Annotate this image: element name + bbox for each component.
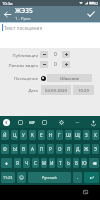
button[interactable]: Я	[14, 158, 21, 168]
button[interactable]: Ю	[81, 158, 87, 168]
staticText: Й	[3, 132, 7, 138]
button[interactable]: Г	[56, 130, 63, 140]
staticText: Х	[94, 132, 97, 138]
button[interactable]: Decrease	[40, 61, 48, 68]
button[interactable]: В	[20, 144, 27, 154]
staticText: Ц	[13, 132, 17, 138]
staticText: У	[22, 132, 25, 138]
button[interactable]: М	[41, 158, 47, 168]
button[interactable]: Ц	[11, 130, 18, 140]
button[interactable]: Обычное	[47, 74, 92, 82]
button[interactable]: О	[56, 144, 63, 154]
staticText: К	[31, 132, 34, 138]
button[interactable]: Л	[65, 144, 72, 154]
staticText: 0	[54, 51, 57, 58]
button[interactable]: Д	[74, 144, 81, 154]
button[interactable]: Sticker	[40, 118, 48, 126]
staticText: Л	[67, 146, 71, 152]
button[interactable]: Х	[92, 130, 99, 140]
staticText: Дата	[28, 87, 38, 93]
button[interactable]: Clipboard	[16, 118, 24, 126]
button[interactable]: Э	[92, 144, 99, 154]
button[interactable]: Increase	[62, 61, 70, 68]
button[interactable]: Settings	[57, 118, 65, 126]
staticText: М	[42, 160, 47, 166]
button[interactable]: К	[29, 130, 36, 140]
staticText: В	[22, 146, 25, 152]
button[interactable]: Save	[84, 6, 98, 22]
staticText: Публикация	[12, 52, 38, 58]
button[interactable]: Voice input	[89, 118, 97, 126]
staticText: З	[85, 132, 88, 138]
button[interactable]: Й	[1, 130, 9, 140]
button[interactable]: Н	[47, 130, 54, 140]
staticText: Ы	[13, 146, 17, 152]
button[interactable]: Ш	[65, 130, 72, 140]
staticText: 1 - Рроs	[15, 16, 31, 22]
button[interactable]: Shift	[1, 158, 12, 168]
staticText: 0	[54, 61, 57, 68]
staticText: Посещение	[13, 75, 38, 81]
button[interactable]: С	[32, 158, 39, 168]
staticText: 04.09.2020	[45, 87, 67, 93]
button[interactable]: З	[83, 130, 90, 140]
staticText: Н	[49, 132, 53, 138]
staticText: 92	[94, 1, 99, 6]
staticText: ЖЭ35	[15, 6, 33, 15]
button[interactable]: Русский	[28, 172, 71, 183]
button[interactable]: И	[49, 158, 55, 168]
button[interactable]: Hide keyboard	[80, 187, 90, 197]
staticText: Д	[76, 146, 80, 152]
button[interactable]: Р	[47, 144, 54, 154]
button[interactable]: 04.09.2020	[41, 85, 71, 95]
button[interactable]: Back	[0, 6, 15, 22]
button[interactable]: Т	[57, 158, 63, 168]
button[interactable]: Decrease	[40, 51, 48, 58]
button[interactable]: А	[29, 144, 36, 154]
staticText: Текст посещения	[4, 25, 43, 31]
button[interactable]: Back	[3, 119, 10, 126]
staticText: Русский	[42, 175, 57, 180]
button[interactable]: Е	[38, 130, 45, 140]
button[interactable]: П	[38, 144, 45, 154]
staticText: Ф	[3, 146, 7, 152]
staticText: Показы видео	[8, 62, 38, 68]
button[interactable]: Type	[40, 75, 46, 81]
staticText: Т	[59, 160, 62, 166]
staticText: Э	[94, 146, 97, 152]
staticText: Ь	[67, 160, 70, 166]
staticText: Ш	[66, 132, 71, 138]
button[interactable]: Ы	[11, 144, 18, 154]
staticText: Ю	[82, 160, 87, 166]
button[interactable]: У	[20, 130, 27, 140]
staticText: Ч	[25, 160, 29, 166]
button[interactable]: Increase	[62, 51, 70, 58]
button[interactable]: Ф	[1, 144, 9, 154]
button[interactable]: Enter	[84, 172, 99, 183]
button[interactable]: Emoji	[17, 172, 26, 183]
button[interactable]: More	[73, 118, 81, 126]
staticText: 10:3и	[2, 1, 13, 6]
staticText: 11:23	[3, 175, 13, 180]
button[interactable]: .	[73, 172, 82, 183]
staticText: Б	[75, 160, 78, 166]
button[interactable]: Б	[73, 158, 79, 168]
button[interactable]: 10:29	[73, 85, 94, 95]
staticText: 10:29	[78, 87, 89, 93]
button[interactable]: Ь	[65, 158, 71, 168]
staticText: Ж	[84, 146, 89, 152]
staticText: GIF	[29, 120, 35, 125]
staticText: П	[40, 146, 44, 152]
staticText: И	[50, 160, 54, 166]
staticText: .	[77, 174, 79, 181]
staticText: Обычное	[60, 75, 80, 81]
staticText: А	[31, 146, 34, 152]
button[interactable]: Щ	[74, 130, 81, 140]
button[interactable]: Ч	[23, 158, 30, 168]
button[interactable]: Backspace	[89, 158, 99, 168]
staticText: Р	[49, 146, 52, 152]
staticText: Г	[58, 132, 61, 138]
button[interactable]: 11:23	[1, 172, 15, 183]
button[interactable]: Ж	[83, 144, 90, 154]
staticText: О	[58, 146, 62, 152]
